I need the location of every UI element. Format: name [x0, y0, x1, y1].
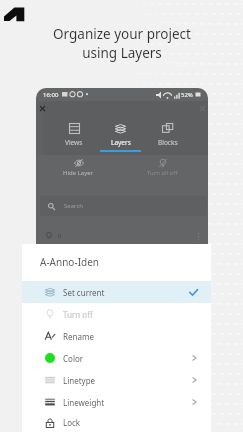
- staticText: Views: [65, 138, 83, 147]
- staticText: Organize your project: [53, 25, 191, 43]
- button[interactable]: Turn off: [22, 303, 211, 325]
- button[interactable]: Color: [22, 347, 211, 369]
- staticText: Hide Layer: [63, 169, 94, 177]
- button[interactable]: Views: [51, 113, 97, 150]
- button[interactable]: Rename: [22, 325, 211, 347]
- staticText: Lock: [63, 417, 81, 428]
- staticText: A-Anno-Iden: [40, 255, 99, 269]
- other: Dismiss: [200, 106, 205, 111]
- button[interactable]: Linetype: [22, 369, 211, 391]
- button[interactable]: Set current: [22, 281, 211, 303]
- button[interactable]: Layers: [97, 113, 144, 152]
- staticText: Lineweight: [63, 397, 105, 408]
- staticText: Rename: [63, 331, 94, 342]
- staticText: 16:00: [43, 91, 59, 99]
- staticText: Color: [63, 353, 84, 364]
- button[interactable]: Turn all off: [120, 158, 204, 177]
- other: Close: [40, 106, 45, 111]
- button[interactable]: Lineweight: [22, 391, 211, 413]
- staticText: Linetype: [63, 375, 96, 386]
- staticText: Search: [64, 202, 83, 210]
- button[interactable]: Lock: [22, 413, 211, 432]
- staticText: Turn all off: [147, 169, 178, 177]
- staticText: Set current: [63, 287, 105, 298]
- staticText: Blocks: [158, 138, 178, 147]
- staticText: using Layers: [82, 44, 162, 62]
- button[interactable]: Search: [40, 196, 207, 216]
- button[interactable]: Hide Layer: [36, 158, 120, 177]
- staticText: Layers: [111, 138, 131, 147]
- button[interactable]: Blocks: [144, 113, 191, 150]
- other: App logo: [0, 0, 26, 26]
- staticText: 0: [58, 232, 62, 240]
- staticText: Turn off: [63, 309, 93, 320]
- staticText: 52%: [181, 91, 193, 99]
